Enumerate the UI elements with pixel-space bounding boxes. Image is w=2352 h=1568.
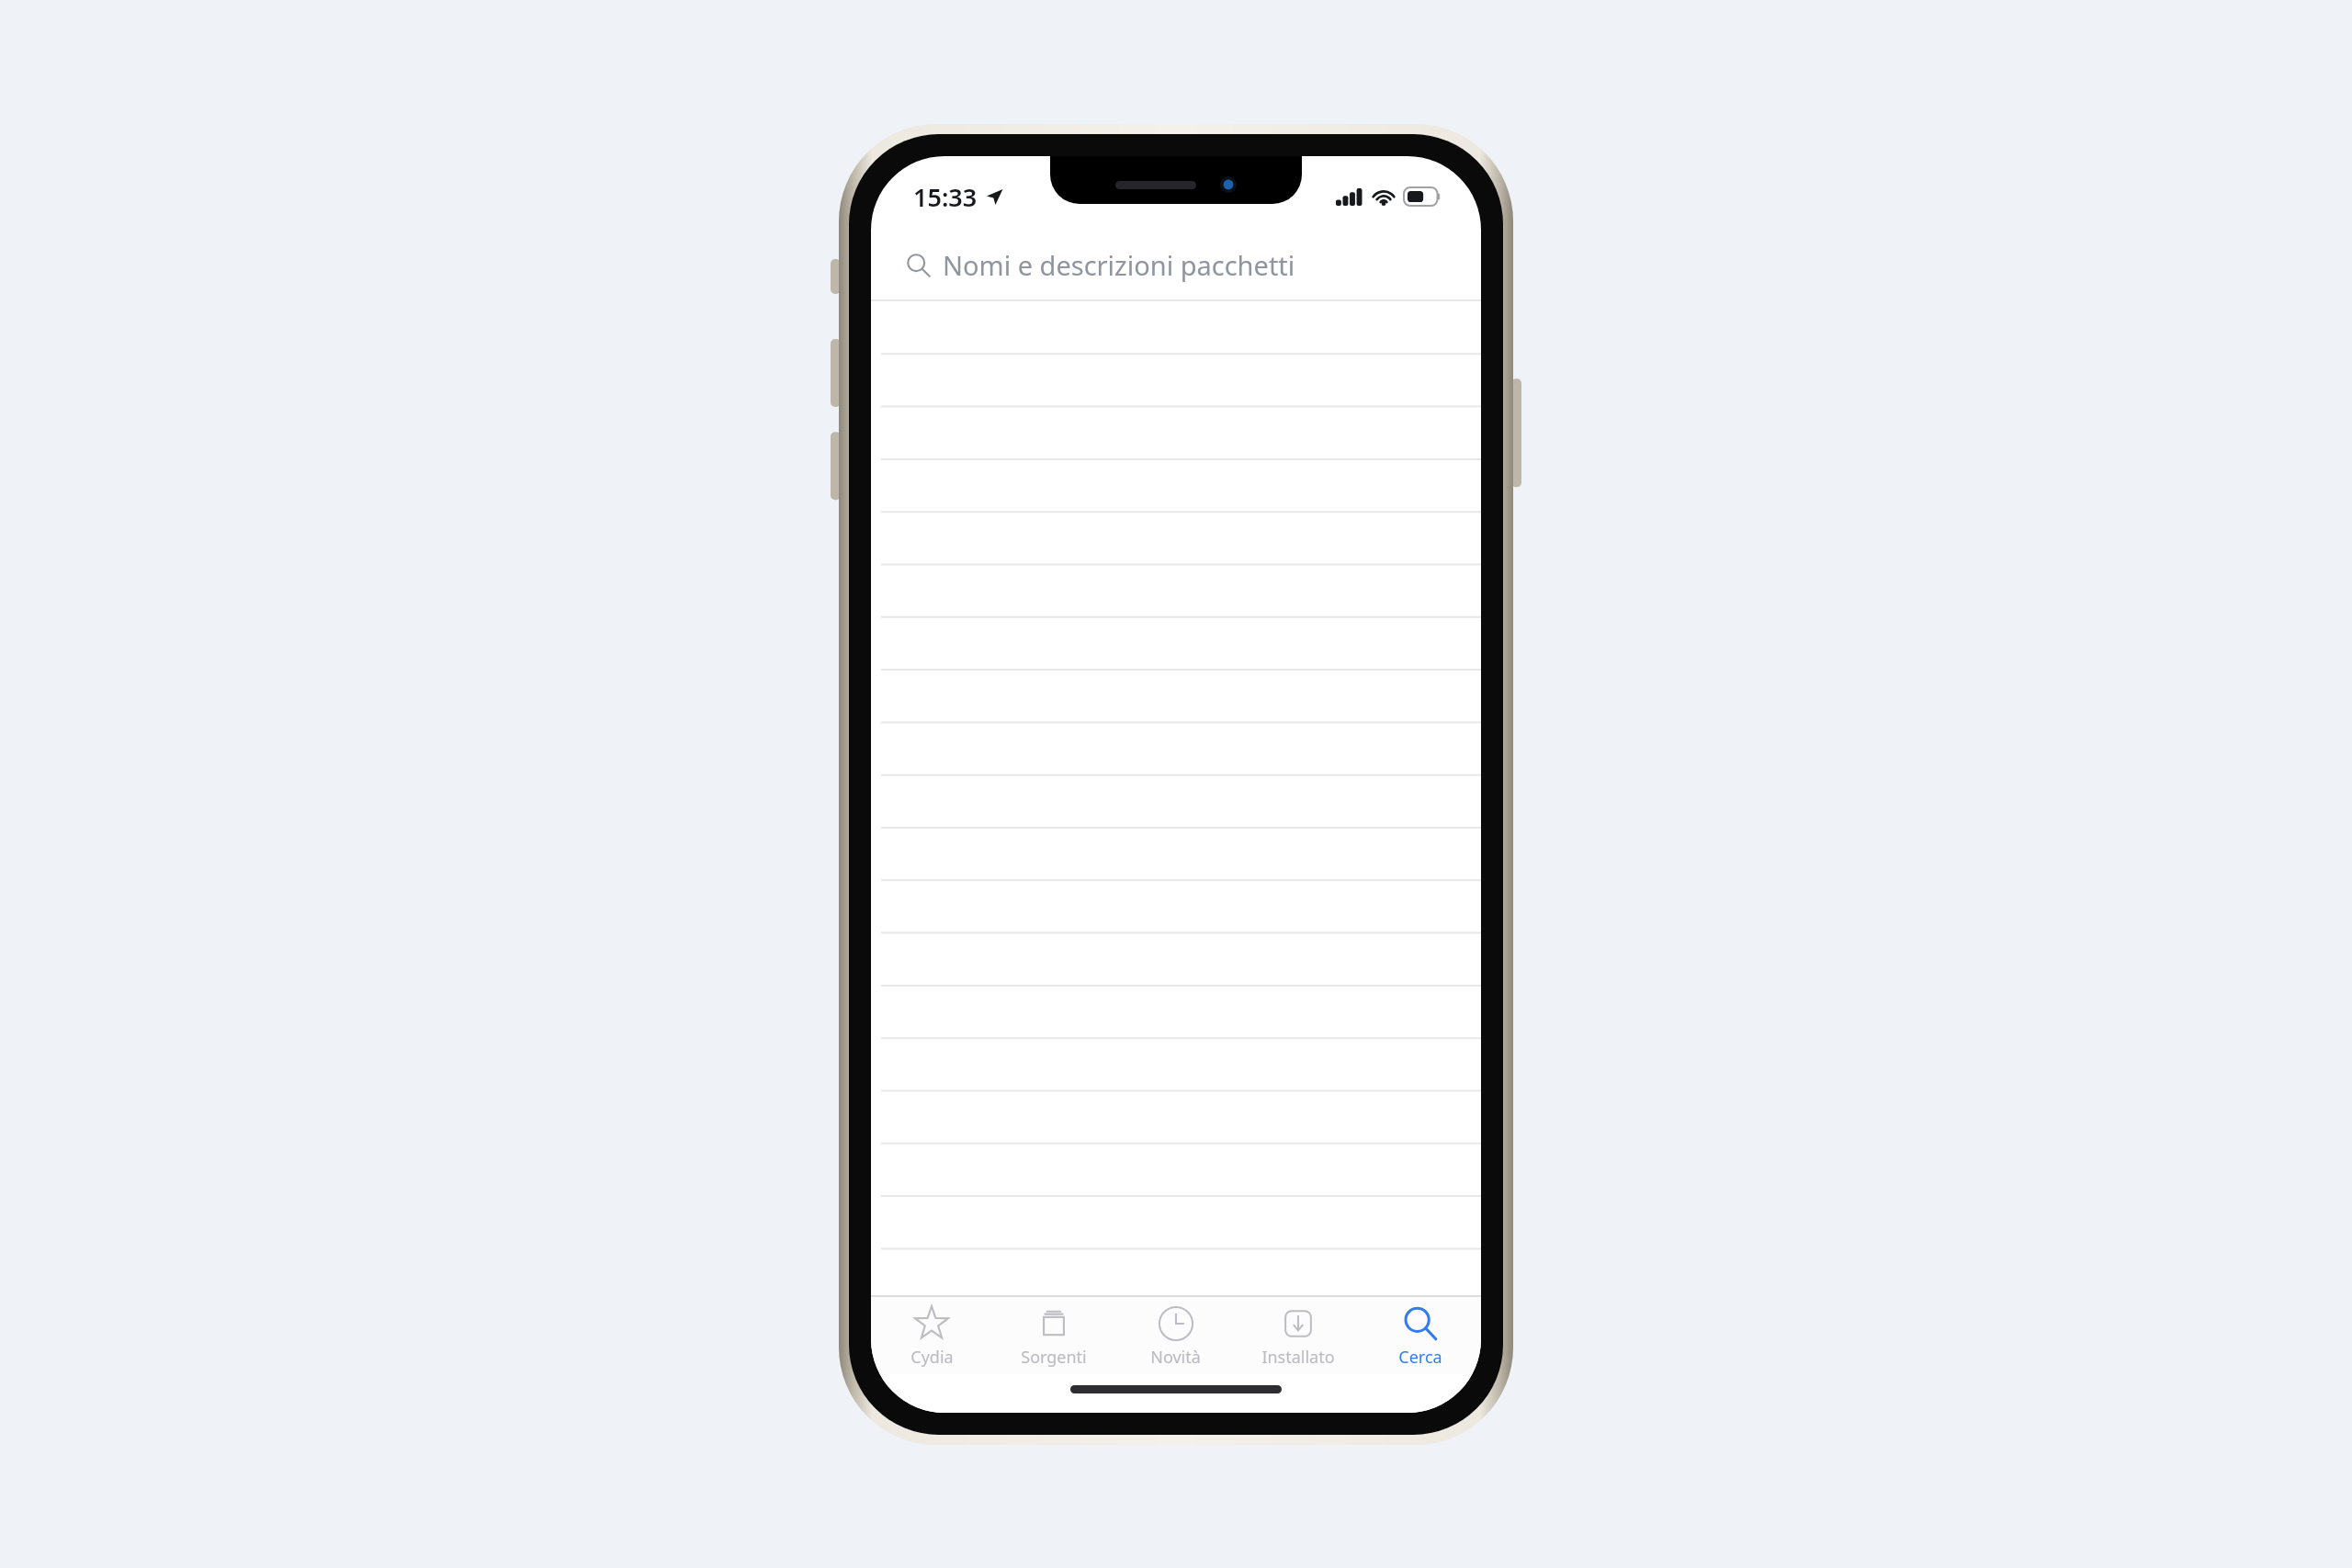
button[interactable]: Novità (1114, 1297, 1237, 1374)
button[interactable]: Cydia (871, 1297, 992, 1374)
staticText: 15:33 (913, 180, 978, 214)
other: Cerca (906, 253, 932, 278)
staticText: Cydia (910, 1346, 954, 1369)
staticText: Cerca (1398, 1346, 1442, 1369)
button[interactable]: Cerca (871, 228, 1481, 301)
staticText: Sorgenti (1021, 1346, 1087, 1369)
button[interactable]: Installato (1237, 1297, 1359, 1374)
staticText: Installato (1261, 1346, 1335, 1369)
staticText: Nomi e descrizioni pacchetti (943, 247, 1295, 283)
button[interactable]: Sorgenti (992, 1297, 1114, 1374)
button[interactable]: Cerca (1359, 1297, 1481, 1374)
staticText: Novità (1150, 1346, 1201, 1369)
